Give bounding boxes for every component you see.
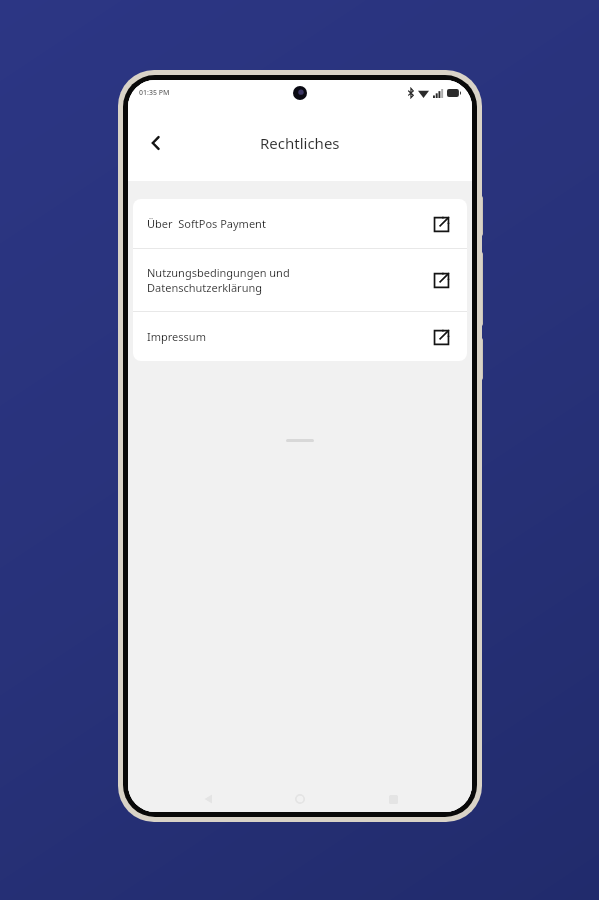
staticText: 01:35 PM [139,88,170,98]
staticText: Über SoftPos Payment [147,216,266,231]
staticText: Impressum [147,329,206,344]
staticText: Datenschutzerklärung [147,280,262,295]
button[interactable]: Open in new window [427,210,455,238]
button[interactable]: Recent apps [380,786,406,812]
button[interactable]: Open in new window [427,323,455,351]
button[interactable]: Nutzungsbedingungen und [133,249,467,311]
staticText: Rechtliches [260,133,340,153]
button[interactable]: Back [136,123,176,163]
button[interactable]: Impressum [133,312,467,361]
staticText: Nutzungsbedingungen und [147,265,290,280]
button[interactable]: Über SoftPos Payment [133,199,467,248]
button[interactable]: Open in new window [427,266,455,294]
